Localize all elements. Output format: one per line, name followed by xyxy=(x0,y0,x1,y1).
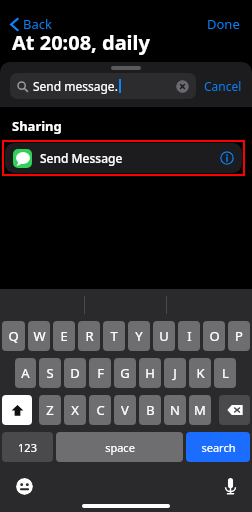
button[interactable]: G xyxy=(114,358,136,388)
staticText: Sharing xyxy=(12,117,62,135)
staticText: V xyxy=(121,401,129,419)
button[interactable]: E xyxy=(53,321,75,351)
button[interactable]: D xyxy=(64,358,86,388)
button[interactable]: Clear text xyxy=(176,80,189,93)
staticText: D xyxy=(70,364,80,382)
staticText: O xyxy=(209,327,220,345)
button[interactable]: X xyxy=(64,395,86,425)
staticText: L xyxy=(222,364,229,382)
staticText: C xyxy=(96,401,105,419)
button[interactable]: C xyxy=(89,395,111,425)
button[interactable]: F xyxy=(89,358,111,388)
staticText: E xyxy=(60,327,68,345)
button[interactable]: N xyxy=(164,395,186,425)
staticText: I xyxy=(187,327,192,345)
button[interactable]: space xyxy=(56,432,183,462)
button[interactable]: R xyxy=(78,321,100,351)
staticText: B xyxy=(146,401,155,419)
button[interactable]: P xyxy=(228,321,250,351)
button[interactable]: K xyxy=(189,358,211,388)
staticText: Send message. xyxy=(33,78,118,94)
button[interactable]: Shift xyxy=(2,395,32,425)
staticText: Y xyxy=(135,327,143,345)
button[interactable]: Dictate xyxy=(225,478,236,495)
staticText: X xyxy=(71,401,79,419)
button[interactable]: J xyxy=(164,358,186,388)
button[interactable]: O xyxy=(203,321,225,351)
button[interactable]: M xyxy=(189,395,211,425)
staticText: S xyxy=(46,364,54,382)
staticText: K xyxy=(196,364,205,382)
staticText: Cancel xyxy=(204,78,242,94)
button[interactable]: L xyxy=(214,358,236,388)
button[interactable]: Z xyxy=(39,395,61,425)
staticText: Send Message xyxy=(40,150,123,166)
button[interactable]: Done xyxy=(203,12,244,36)
staticText: M xyxy=(194,401,206,419)
button[interactable]: S xyxy=(39,358,61,388)
staticText: Z xyxy=(46,401,54,419)
button[interactable]: 123 xyxy=(2,432,53,462)
button[interactable]: A xyxy=(15,358,36,388)
staticText: G xyxy=(120,364,130,382)
button[interactable]: Back xyxy=(6,12,56,36)
staticText: W xyxy=(33,327,46,345)
staticText: P xyxy=(235,327,243,345)
staticText: N xyxy=(170,401,180,419)
staticText: A xyxy=(21,364,30,382)
button[interactable]: More info xyxy=(220,151,234,165)
button[interactable]: Cancel xyxy=(202,75,244,97)
staticText: search xyxy=(201,440,236,455)
button[interactable]: T xyxy=(103,321,125,351)
staticText: 123 xyxy=(18,440,37,455)
button[interactable]: V xyxy=(114,395,136,425)
staticText: space xyxy=(105,440,135,455)
button[interactable]: H xyxy=(139,358,161,388)
button[interactable]: Q xyxy=(2,321,25,351)
button[interactable]: U xyxy=(153,321,175,351)
button[interactable]: B xyxy=(139,395,161,425)
staticText: Done xyxy=(207,15,240,33)
staticText: Back xyxy=(23,15,52,33)
staticText: H xyxy=(145,364,155,382)
button[interactable]: search xyxy=(186,432,250,462)
staticText: U xyxy=(159,327,169,345)
button[interactable]: Y xyxy=(128,321,150,351)
button[interactable]: Send Message xyxy=(5,143,242,173)
staticText: T xyxy=(110,327,118,345)
staticText: Q xyxy=(8,327,19,345)
button[interactable]: W xyxy=(28,321,50,351)
staticText: At 20:08, daily xyxy=(12,29,150,56)
staticText: R xyxy=(85,327,94,345)
button[interactable]: I xyxy=(178,321,200,351)
staticText: J xyxy=(173,364,177,382)
staticText: F xyxy=(97,364,104,382)
button[interactable]: Emoji xyxy=(16,478,33,495)
button[interactable]: Send message. xyxy=(10,73,196,99)
button[interactable]: Backspace xyxy=(219,395,250,425)
